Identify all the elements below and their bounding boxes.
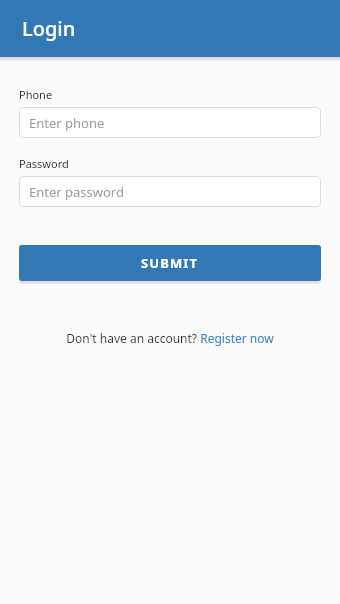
staticText: Enter phone bbox=[29, 114, 105, 132]
staticText: Enter password bbox=[29, 183, 124, 201]
button[interactable]: Enter password bbox=[19, 176, 321, 207]
button[interactable]: SUBMIT bbox=[19, 245, 321, 281]
button[interactable]: Don't have an account? Register now bbox=[66, 330, 274, 346]
staticText: Phone bbox=[19, 87, 53, 102]
staticText: Login bbox=[22, 15, 76, 42]
staticText: SUBMIT bbox=[141, 254, 199, 272]
staticText: Don't have an account? Register now bbox=[66, 330, 274, 346]
staticText: Password bbox=[19, 156, 69, 171]
button[interactable]: Enter phone bbox=[19, 107, 321, 138]
